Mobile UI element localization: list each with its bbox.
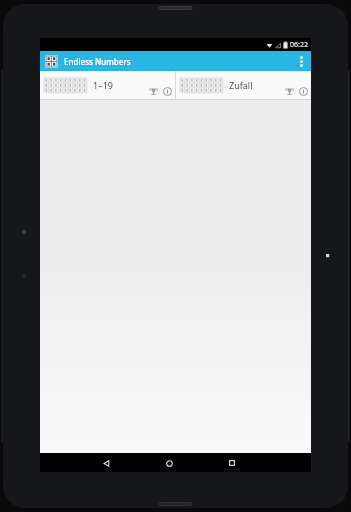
staticText: Zufall <box>229 79 253 91</box>
button[interactable]: More options <box>293 51 309 71</box>
button[interactable]: Home <box>160 454 178 472</box>
staticText: 1–19 <box>93 79 113 91</box>
button[interactable]: Info <box>299 87 308 96</box>
button[interactable]: Zufall <box>176 71 311 99</box>
staticText: Endless Numbers <box>64 56 131 67</box>
staticText: 06:22 <box>290 40 308 50</box>
button[interactable]: Recent apps <box>223 454 241 472</box>
button[interactable]: Back <box>97 454 115 472</box>
button[interactable]: 1–19 <box>40 71 175 99</box>
button[interactable]: High score <box>285 87 294 96</box>
button[interactable]: High score <box>149 87 158 96</box>
button[interactable]: Info <box>163 87 172 96</box>
